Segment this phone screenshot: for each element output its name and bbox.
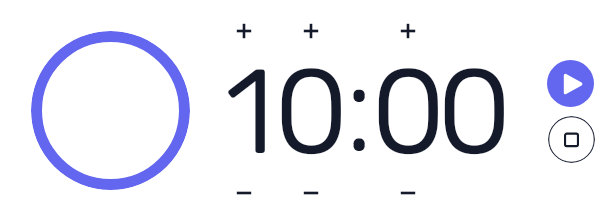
- button[interactable]: Timer progress: [31, 31, 190, 190]
- button[interactable]: Decrease: [228, 177, 260, 209]
- button[interactable]: Decrease: [295, 177, 327, 209]
- button[interactable]: Stop timer: [548, 116, 595, 163]
- button[interactable]: Increase: [392, 15, 424, 47]
- button[interactable]: Decrease: [392, 177, 424, 209]
- button[interactable]: 10 minutes 00 seconds: [220, 60, 516, 160]
- button[interactable]: Increase: [295, 15, 327, 47]
- button[interactable]: Increase: [228, 15, 260, 47]
- button[interactable]: Start timer: [547, 60, 594, 107]
